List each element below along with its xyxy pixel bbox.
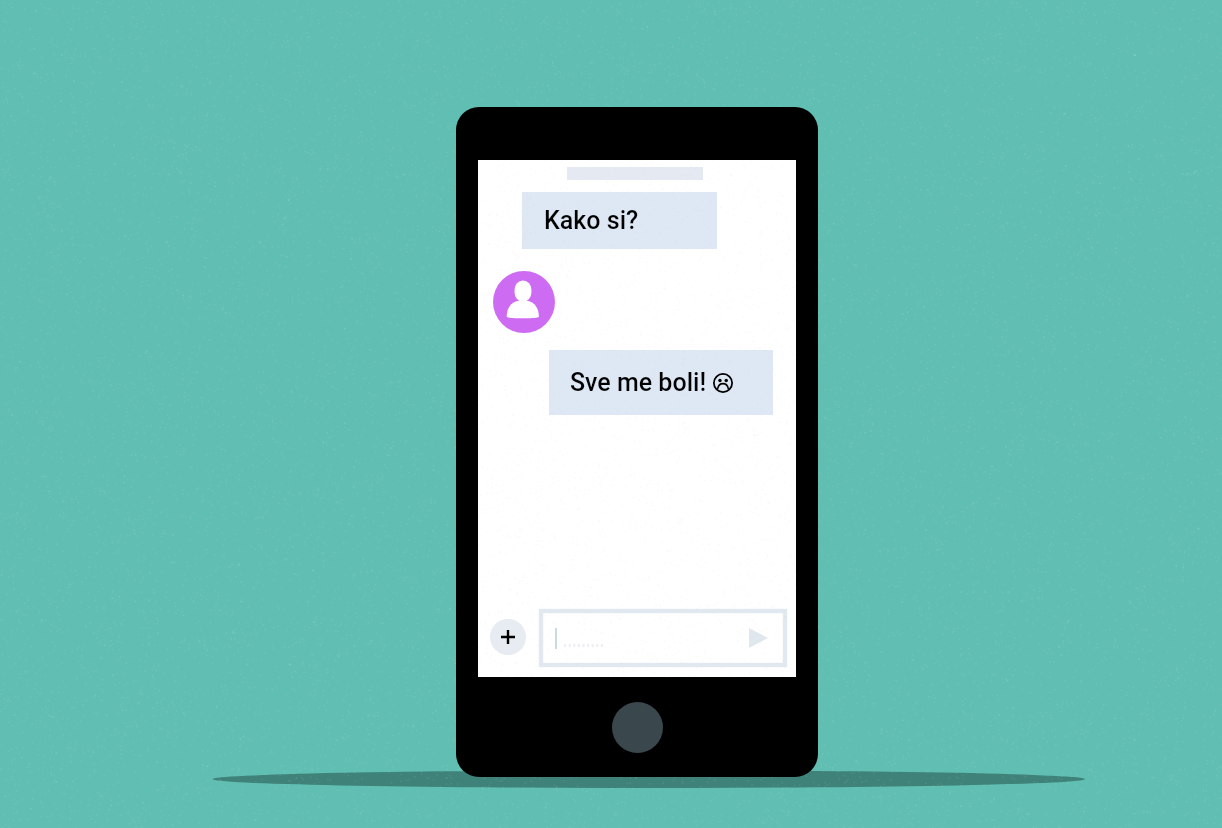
button[interactable]: Add attachment bbox=[490, 619, 526, 655]
button[interactable]: Kako si? bbox=[522, 192, 717, 249]
button[interactable]: Home bbox=[612, 702, 663, 753]
button[interactable]: Message input bbox=[541, 611, 785, 665]
staticText: Sve me boli! bbox=[570, 368, 707, 397]
button[interactable]: Sve me boli! bbox=[549, 350, 773, 415]
other: Send bbox=[749, 628, 768, 648]
button[interactable]: Contact avatar bbox=[493, 271, 555, 333]
staticText: Kako si? bbox=[544, 206, 639, 235]
